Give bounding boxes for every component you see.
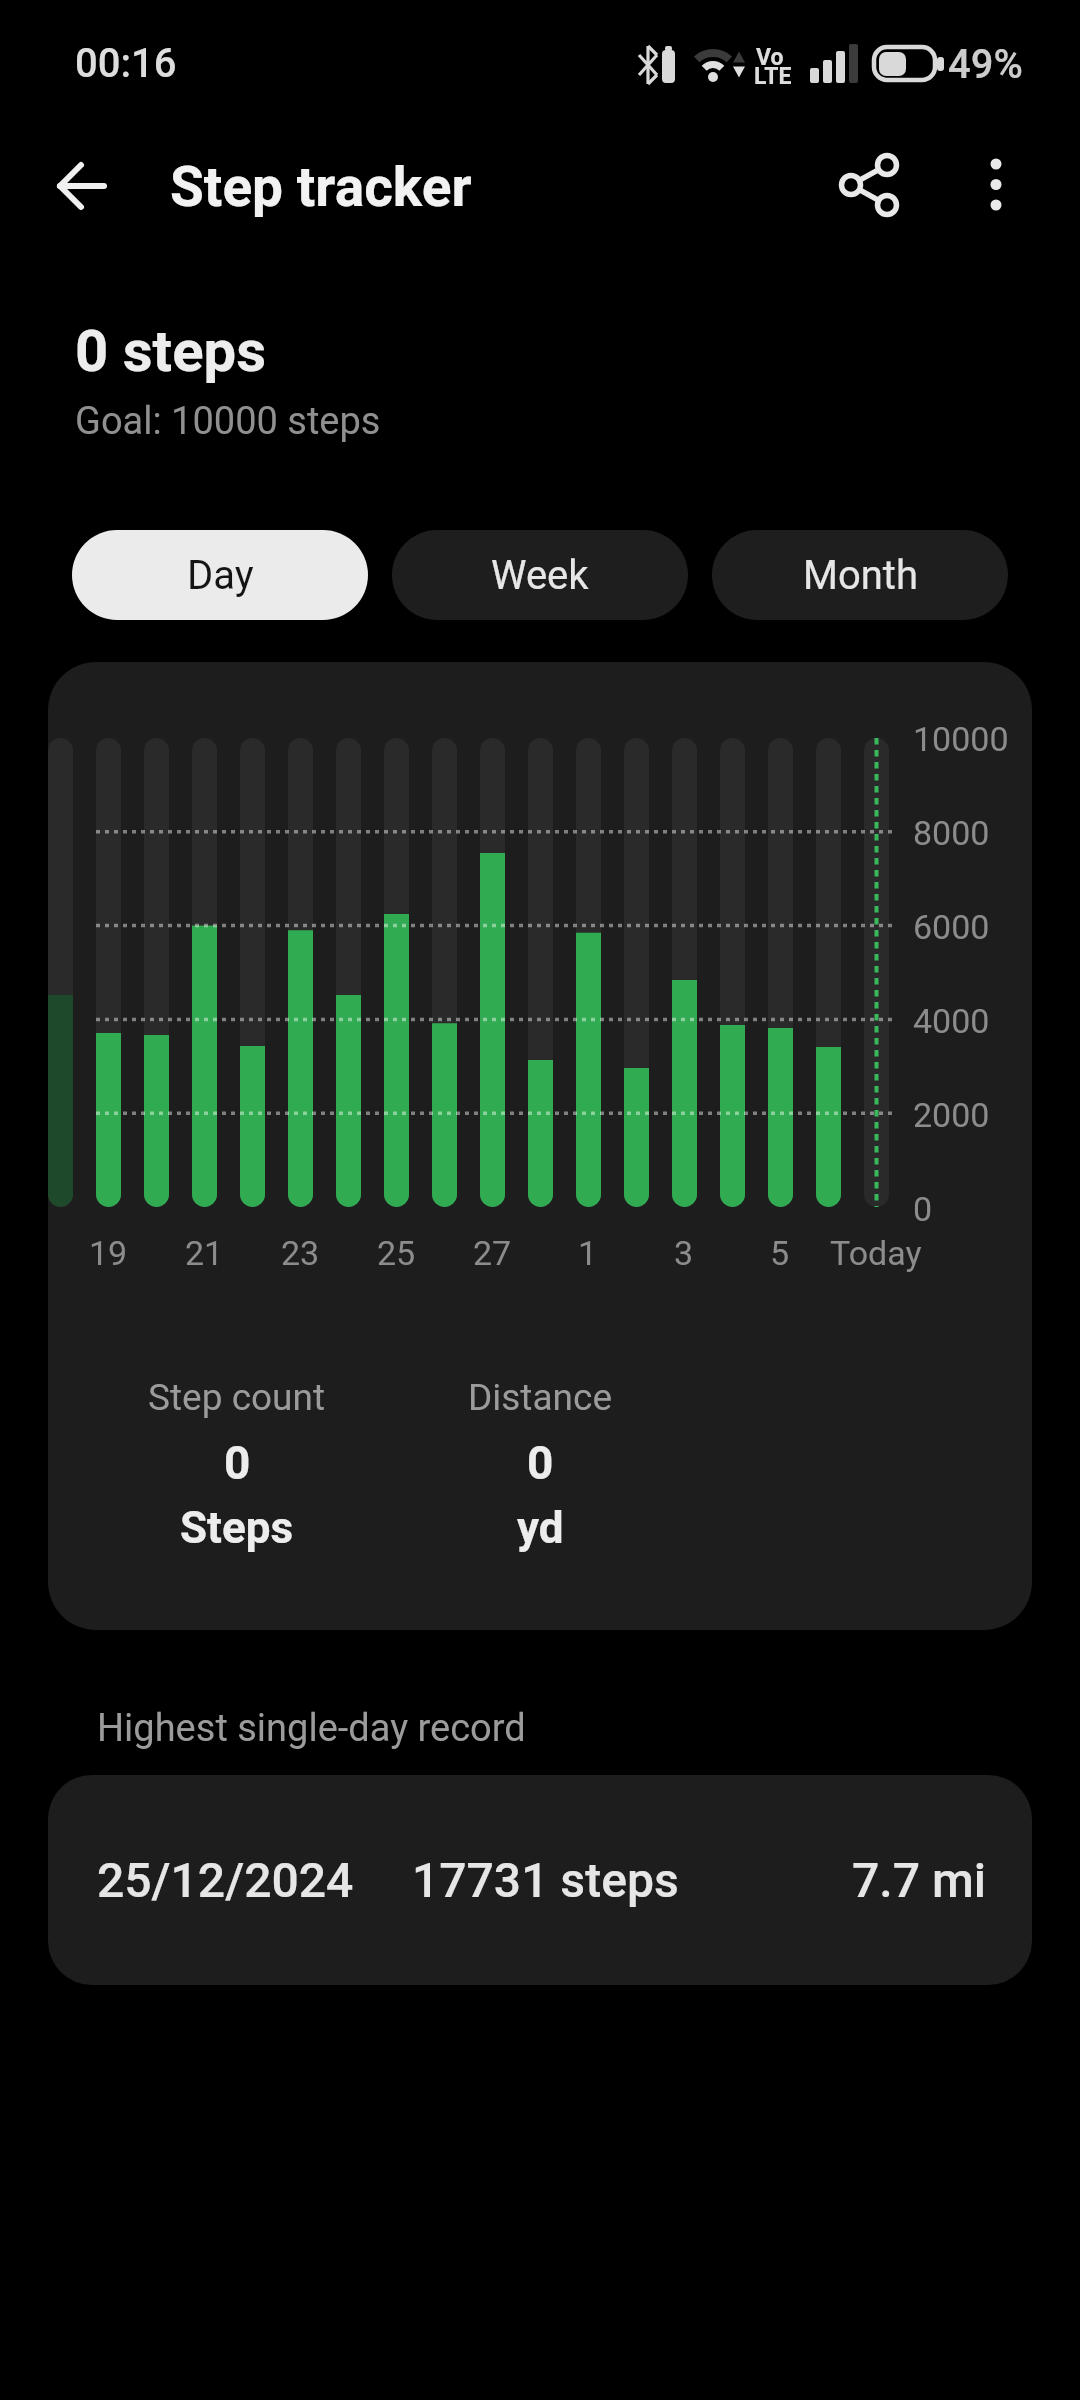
staticText: Month [803, 552, 918, 599]
staticText: 1 [578, 1233, 598, 1273]
staticText: LTE [754, 63, 792, 90]
staticText: 27 [473, 1233, 512, 1273]
button[interactable]: Month [712, 530, 1008, 620]
staticText: 2000 [913, 1095, 990, 1135]
staticText: 7.7 mi [852, 1852, 986, 1908]
staticText: yd [517, 1502, 564, 1554]
staticText: 0 [527, 1436, 554, 1490]
button[interactable]: 25/12/2024 [48, 1775, 1032, 1985]
staticText: 49% [948, 41, 1023, 88]
staticText: 21 [185, 1233, 224, 1273]
staticText: 5 [770, 1233, 790, 1273]
button[interactable]: Day [72, 530, 368, 620]
button[interactable] [40, 150, 130, 230]
staticText: Vo [756, 44, 784, 71]
staticText: 10000 [913, 719, 1009, 759]
button[interactable] [825, 145, 915, 230]
staticText: 0 [913, 1189, 933, 1229]
staticText: 25 [377, 1233, 416, 1273]
staticText: 4000 [913, 1001, 990, 1041]
staticText: 0 [224, 1436, 251, 1490]
staticText: Steps [180, 1502, 294, 1554]
staticText: 25/12/2024 [97, 1852, 354, 1908]
staticText: 3 [674, 1233, 694, 1273]
staticText: Week [491, 552, 589, 599]
staticText: 19 [89, 1233, 128, 1273]
staticText: 0 steps [75, 317, 267, 385]
staticText: Step tracker [170, 155, 472, 219]
staticText: Highest single-day record [97, 1706, 526, 1751]
staticText: 6000 [913, 907, 990, 947]
button[interactable] [961, 145, 1031, 230]
button[interactable]: Week [392, 530, 688, 620]
staticText: Day [187, 552, 254, 599]
staticText: Step count [148, 1376, 326, 1419]
staticText: 00:16 [75, 40, 177, 87]
staticText: Today [830, 1233, 922, 1273]
staticText: Goal: 10000 steps [75, 399, 381, 444]
staticText: 17731 steps [412, 1852, 679, 1908]
staticText: 8000 [913, 813, 990, 853]
staticText: 23 [281, 1233, 320, 1273]
staticText: Distance [468, 1376, 613, 1419]
